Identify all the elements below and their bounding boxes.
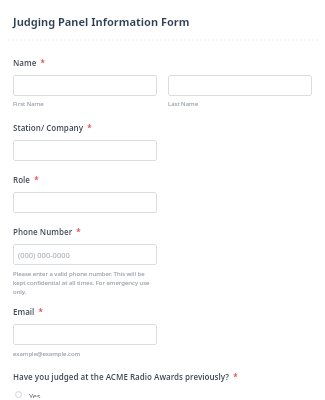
staticText: Station/ Company * [13,122,92,133]
staticText: Phone Number * [13,226,81,237]
staticText: Have you judged at the ACME Radio Awards… [13,371,238,382]
staticText: Role * [13,174,39,185]
staticText: Yes [29,391,41,398]
staticText: Last Name [168,100,199,108]
staticText: (000) 000-0000 [18,250,70,260]
button[interactable]: (000) 000-0000 [13,244,157,265]
button[interactable]: Yes [13,389,325,400]
button[interactable] [168,75,312,96]
button[interactable] [13,140,157,161]
staticText: example@example.com [13,350,81,358]
button[interactable] [13,192,157,213]
staticText: Name * [13,57,45,68]
staticText: Please enter a valid phone number. This … [13,270,157,295]
staticText: First Name [13,100,44,108]
button[interactable] [13,324,157,345]
button[interactable] [13,75,157,96]
staticText: Judging Panel Information Form [13,14,190,29]
staticText: Email * [13,306,43,317]
